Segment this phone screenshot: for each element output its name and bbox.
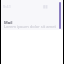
staticText: ▮▮ <box>43 4 48 9</box>
staticText: Mail <box>4 20 13 25</box>
staticText: 9:41 <box>3 4 11 9</box>
staticText: Lorem ipsum dolor sit amet consectetur a… <box>4 24 64 29</box>
